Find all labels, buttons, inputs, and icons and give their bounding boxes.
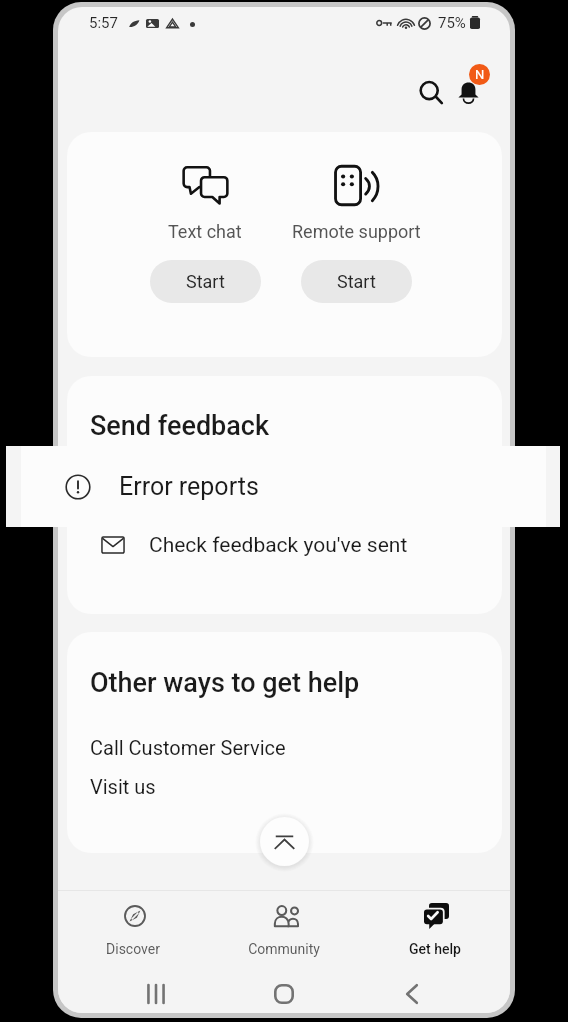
staticText: Get help (409, 941, 461, 957)
button[interactable]: Text chat (115, 163, 295, 303)
button[interactable]: Search (408, 70, 454, 116)
button[interactable]: Community (208, 891, 359, 958)
staticText: Send feedback (90, 410, 270, 442)
staticText: Visit us (90, 775, 156, 798)
button[interactable]: Start (301, 260, 412, 303)
button[interactable]: Error reports (67, 436, 502, 494)
button[interactable]: Error reports (6, 446, 560, 527)
staticText: Start (337, 271, 376, 292)
staticText: Remote support (292, 221, 421, 242)
staticText: 75% (438, 14, 466, 32)
button[interactable]: Back (385, 970, 438, 1013)
button[interactable]: Call Customer Service (67, 727, 502, 767)
button[interactable]: Home (257, 970, 310, 1013)
button[interactable]: Remote support (266, 163, 446, 303)
button[interactable]: Scroll to top (260, 817, 309, 866)
staticText: N (475, 67, 485, 82)
staticText: Error reports (119, 472, 259, 501)
staticText: Call Customer Service (90, 736, 286, 759)
staticText: Check feedback you've sent (149, 533, 408, 558)
staticText: Text chat (168, 221, 242, 242)
button[interactable]: Discover (58, 891, 208, 958)
button[interactable]: Recents (129, 970, 182, 1013)
staticText: Community (248, 941, 320, 957)
staticText: 5:57 (89, 14, 118, 32)
button[interactable]: Visit us (67, 766, 502, 806)
staticText: Start (186, 271, 225, 292)
button[interactable]: Check feedback you've sent (67, 518, 502, 572)
button[interactable]: Get help (359, 891, 510, 958)
staticText: Other ways to get help (90, 667, 360, 699)
staticText: Discover (106, 941, 160, 957)
button[interactable]: Start (150, 260, 261, 303)
button[interactable]: Notifications (445, 70, 491, 116)
